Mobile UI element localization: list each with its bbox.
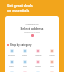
- button[interactable]: Fresh: [18, 49, 31, 57]
- staticText: Select address: [5, 27, 59, 31]
- staticText: Get great deals: [7, 3, 33, 8]
- staticText: on essentials: [7, 8, 30, 13]
- staticText: Baby: [9, 65, 14, 68]
- button[interactable]: Tech: [45, 71, 59, 72]
- staticText: Pets: [23, 65, 27, 68]
- staticText: Health: [35, 65, 41, 68]
- staticText: Toys: [50, 65, 54, 68]
- button[interactable]: Beauty: [31, 49, 45, 57]
- staticText: Shop by category: [10, 43, 32, 46]
- button[interactable]: Baby: [5, 60, 18, 68]
- button[interactable]: Health: [31, 60, 45, 68]
- button[interactable]: Shop by category: [7, 43, 32, 46]
- button[interactable]: Toys: [45, 60, 59, 68]
- button[interactable]: Books: [31, 71, 45, 72]
- button[interactable]: Auto: [18, 71, 31, 72]
- staticText: Deliver in 2 days: [5, 31, 59, 34]
- staticText: Fresh: [22, 54, 27, 57]
- staticText: Home: [49, 54, 55, 57]
- staticText: Grocery: [8, 54, 15, 57]
- staticText: Beauty: [35, 54, 42, 57]
- button[interactable]: Grocery: [5, 49, 18, 57]
- button[interactable]: Home: [45, 49, 59, 57]
- staticText: Shipping to: [5, 22, 59, 25]
- button[interactable]: Sports: [5, 71, 18, 72]
- button[interactable]: Pets: [18, 60, 31, 68]
